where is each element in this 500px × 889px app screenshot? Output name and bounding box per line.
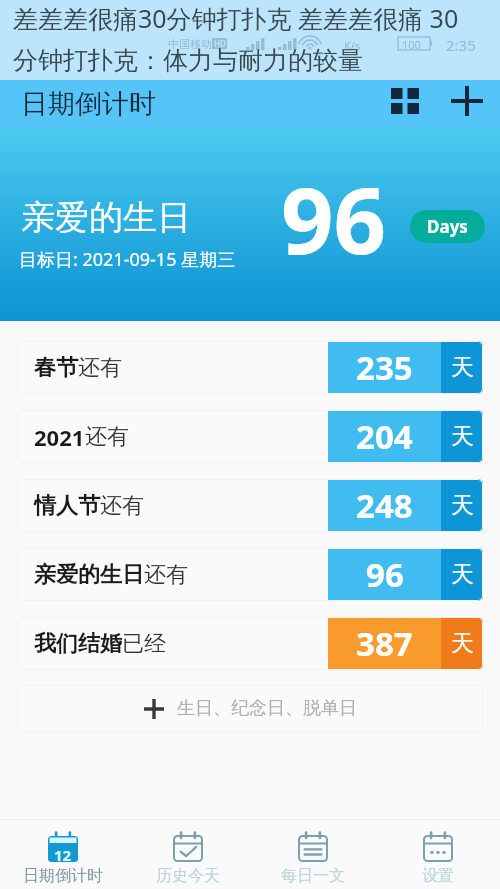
button[interactable]: 亲爱的生日 bbox=[0, 128, 500, 321]
button[interactable]: 每日一文 bbox=[250, 820, 375, 889]
staticText: 还有 bbox=[78, 354, 122, 382]
staticText: 天 bbox=[451, 629, 474, 658]
staticText: 204 bbox=[356, 414, 413, 459]
button[interactable]: 情人节 bbox=[17, 479, 483, 532]
staticText: 天 bbox=[451, 422, 474, 451]
staticText: 亲爱的生日 bbox=[21, 196, 191, 239]
button[interactable]: 生日、纪念日、脱单日 bbox=[17, 685, 483, 732]
staticText: 我们结婚 bbox=[34, 630, 122, 658]
staticText: 每日一文 bbox=[281, 866, 345, 886]
staticText: 历史今天 bbox=[156, 866, 220, 886]
staticText: 248 bbox=[356, 483, 413, 528]
staticText: 还有 bbox=[144, 561, 188, 589]
staticText: 亲爱的生日 bbox=[34, 561, 144, 589]
staticText: 中国移动 bbox=[168, 37, 212, 51]
staticText: Days bbox=[427, 215, 468, 238]
button[interactable]: 我们结婚 bbox=[17, 617, 483, 670]
button[interactable]: 历史今天 bbox=[125, 820, 250, 889]
button[interactable]: 12 bbox=[0, 820, 125, 889]
button[interactable]: 2021 bbox=[17, 410, 483, 463]
staticText: K/s bbox=[344, 38, 361, 53]
staticText: 目标日: 2021-09-15 星期三 bbox=[19, 247, 236, 272]
staticText: 设置 bbox=[422, 866, 454, 886]
staticText: 100 bbox=[402, 37, 421, 52]
staticText: 日期倒计时 bbox=[23, 866, 103, 886]
staticText: 96 bbox=[366, 552, 404, 597]
button[interactable]: 春节 bbox=[17, 341, 483, 394]
staticText: 春节 bbox=[34, 354, 78, 382]
staticText: 2:35 bbox=[446, 35, 476, 55]
staticText: 已经 bbox=[122, 630, 166, 658]
staticText: 12 bbox=[54, 845, 72, 865]
button[interactable]: 亲爱的生日 bbox=[17, 548, 483, 601]
staticText: HD bbox=[214, 38, 226, 49]
button[interactable]: Add bbox=[434, 80, 500, 128]
staticText: 235 bbox=[356, 345, 413, 390]
staticText: 96 bbox=[281, 156, 387, 281]
staticText: 2021 bbox=[34, 422, 85, 452]
staticText: 还有 bbox=[100, 492, 144, 520]
staticText: 情人节 bbox=[34, 492, 100, 520]
button[interactable]: Grid view bbox=[376, 80, 434, 128]
staticText: 生日、纪念日、脱单日 bbox=[177, 697, 357, 720]
staticText: 日期倒计时 bbox=[21, 87, 156, 121]
staticText: 天 bbox=[451, 491, 474, 520]
button[interactable]: 设置 bbox=[375, 820, 500, 889]
staticText: 差差差很痛30分钟打扑克 差差差很痛 30分钟打扑克：体力与耐力的较量 bbox=[13, 1, 482, 76]
staticText: 天 bbox=[451, 560, 474, 589]
staticText: 天 bbox=[451, 353, 474, 382]
staticText: 387 bbox=[356, 621, 413, 666]
staticText: 还有 bbox=[85, 423, 129, 451]
